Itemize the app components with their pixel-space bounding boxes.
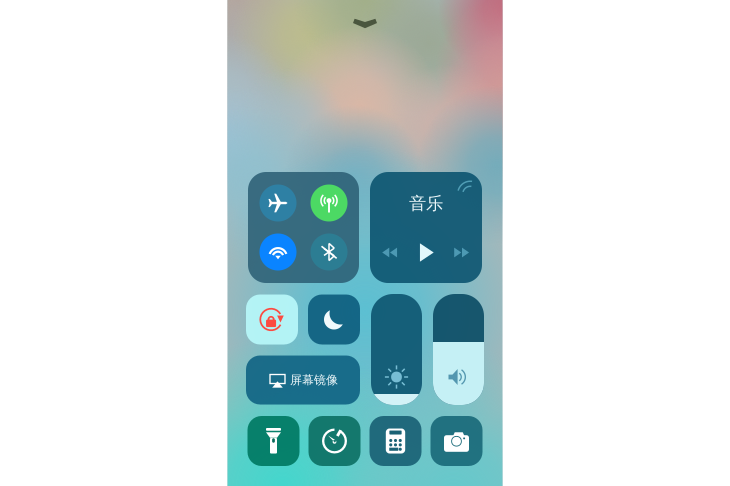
- button[interactable]: Screen Mirroring: [246, 355, 360, 404]
- button[interactable]: Calculator: [369, 416, 421, 466]
- button[interactable]: AirPlay: [455, 178, 471, 194]
- button[interactable]: Play: [412, 240, 440, 264]
- button[interactable]: Next Track: [448, 240, 476, 264]
- button[interactable]: Camera: [430, 416, 482, 466]
- button[interactable]: Close Control Center: [335, 19, 395, 29]
- button[interactable]: Do Not Disturb: [308, 294, 360, 344]
- button[interactable]: Volume: [433, 294, 484, 405]
- button[interactable]: Cellular Data: [310, 184, 347, 221]
- button[interactable]: Timer: [308, 416, 360, 466]
- staticText: 屏幕镜像: [290, 373, 338, 387]
- button[interactable]: Brightness: [371, 294, 422, 405]
- button[interactable]: Rotation Lock: [246, 294, 298, 344]
- button[interactable]: Previous Track: [376, 240, 404, 264]
- staticText: 音乐: [409, 193, 443, 214]
- button[interactable]: Flashlight: [247, 416, 299, 466]
- button[interactable]: Airplane Mode: [259, 184, 296, 221]
- button[interactable]: Wi-Fi: [259, 233, 296, 270]
- button[interactable]: Bluetooth: [310, 233, 347, 270]
